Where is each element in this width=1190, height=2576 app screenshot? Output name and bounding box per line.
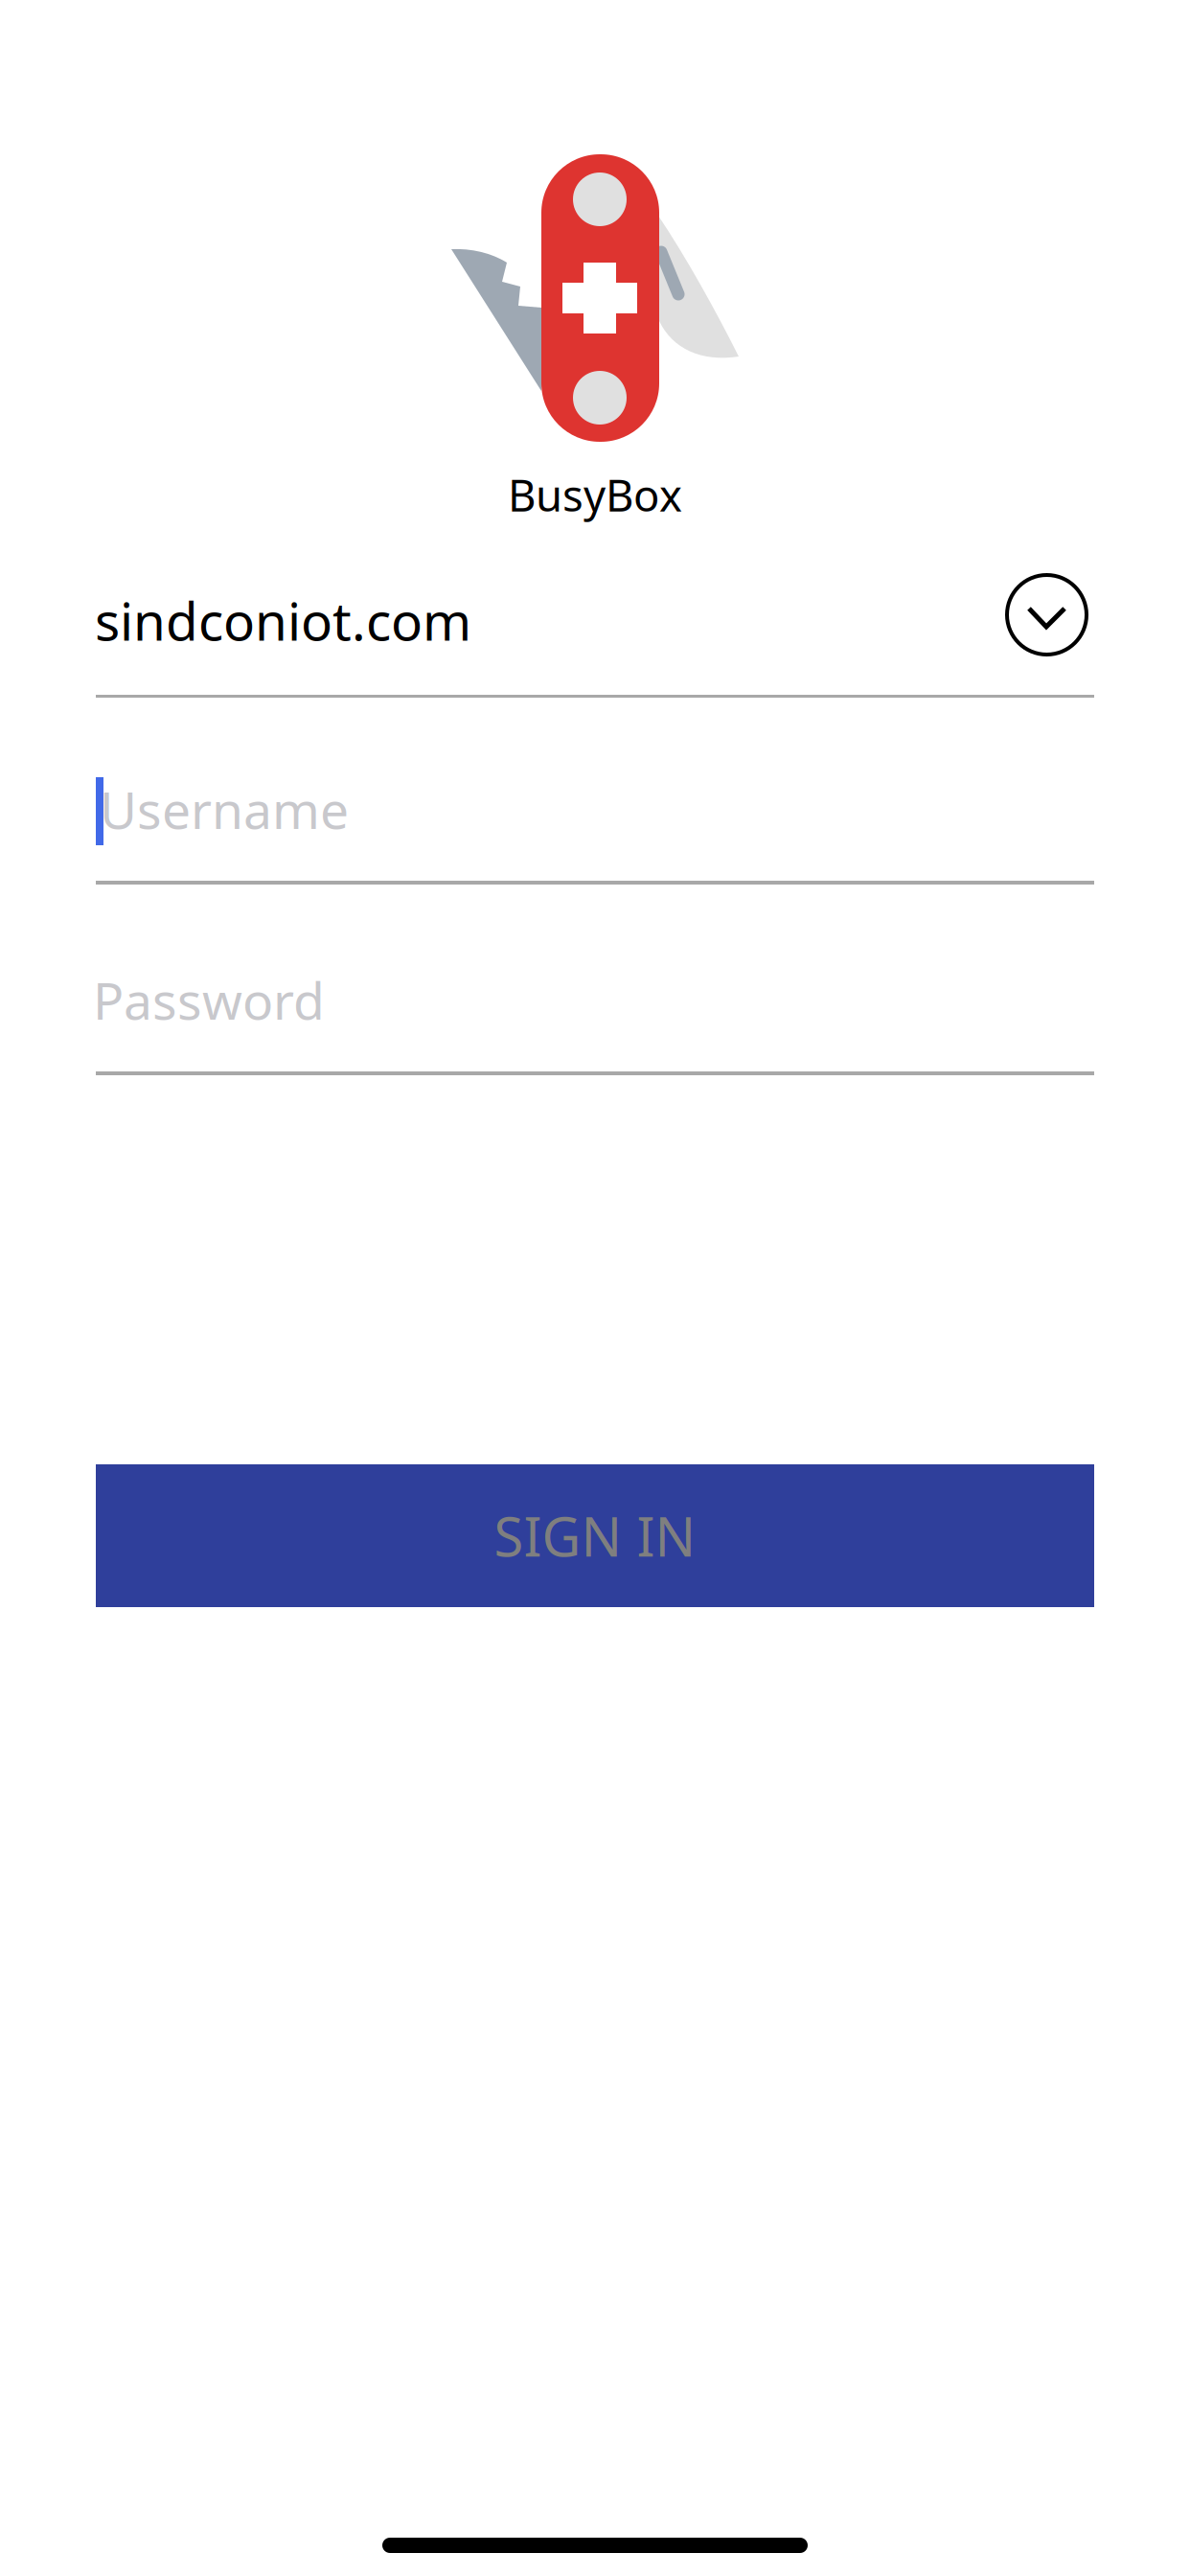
- button[interactable]: Password: [0, 922, 1190, 1111]
- button[interactable]: Server, sindconiot.com: [0, 541, 1190, 731]
- staticText: Password: [93, 966, 325, 1034]
- staticText: SIGN IN: [494, 1500, 696, 1571]
- staticText: Username: [100, 775, 349, 843]
- button[interactable]: Username: [0, 731, 1190, 920]
- staticText: sindconiot.com: [95, 586, 471, 655]
- button[interactable]: SIGN IN: [96, 1464, 1094, 1607]
- staticText: BusyBox: [508, 466, 682, 523]
